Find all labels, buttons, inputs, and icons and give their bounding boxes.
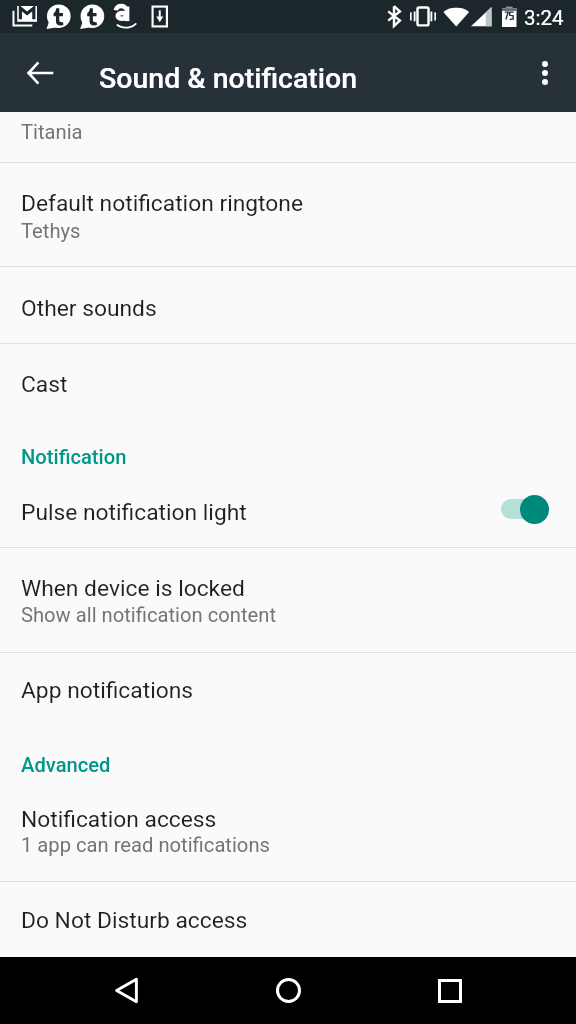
- staticText: 3:24: [524, 6, 564, 30]
- staticText: 1 app can read notifications: [21, 833, 270, 857]
- staticText: Pulse notification light: [21, 499, 247, 526]
- button[interactable]: Cast: [0, 344, 576, 421]
- button[interactable]: When device is locked: [0, 548, 576, 652]
- staticText: Cast: [21, 371, 68, 398]
- button[interactable]: Pulse notification light: [0, 483, 576, 547]
- staticText: Sound & notification: [99, 62, 358, 95]
- staticText: Default notification ringtone: [21, 190, 303, 217]
- button[interactable]: Titania: [0, 112, 576, 162]
- staticText: Show all notification content: [21, 603, 276, 627]
- button[interactable]: Default notification ringtone: [0, 163, 576, 266]
- button[interactable]: Recent apps: [402, 957, 498, 1024]
- button[interactable]: Other sounds: [0, 267, 576, 343]
- staticText: Titania: [21, 120, 83, 144]
- staticText: Other sounds: [21, 295, 157, 322]
- staticText: Advanced: [21, 753, 111, 777]
- button[interactable]: Home: [240, 957, 336, 1024]
- staticText: Tethys: [21, 219, 81, 243]
- button[interactable]: Do Not Disturb access: [0, 882, 576, 957]
- button[interactable]: Notification access: [0, 792, 576, 881]
- button[interactable]: Back: [78, 957, 174, 1024]
- staticText: When device is locked: [21, 575, 245, 602]
- staticText: Notification: [21, 445, 127, 469]
- staticText: App notifications: [21, 677, 194, 704]
- button[interactable]: Navigate up: [3, 33, 75, 112]
- staticText: Do Not Disturb access: [21, 907, 248, 934]
- button[interactable]: More options: [520, 33, 576, 112]
- staticText: Notification access: [21, 806, 217, 833]
- button[interactable]: App notifications: [0, 653, 576, 730]
